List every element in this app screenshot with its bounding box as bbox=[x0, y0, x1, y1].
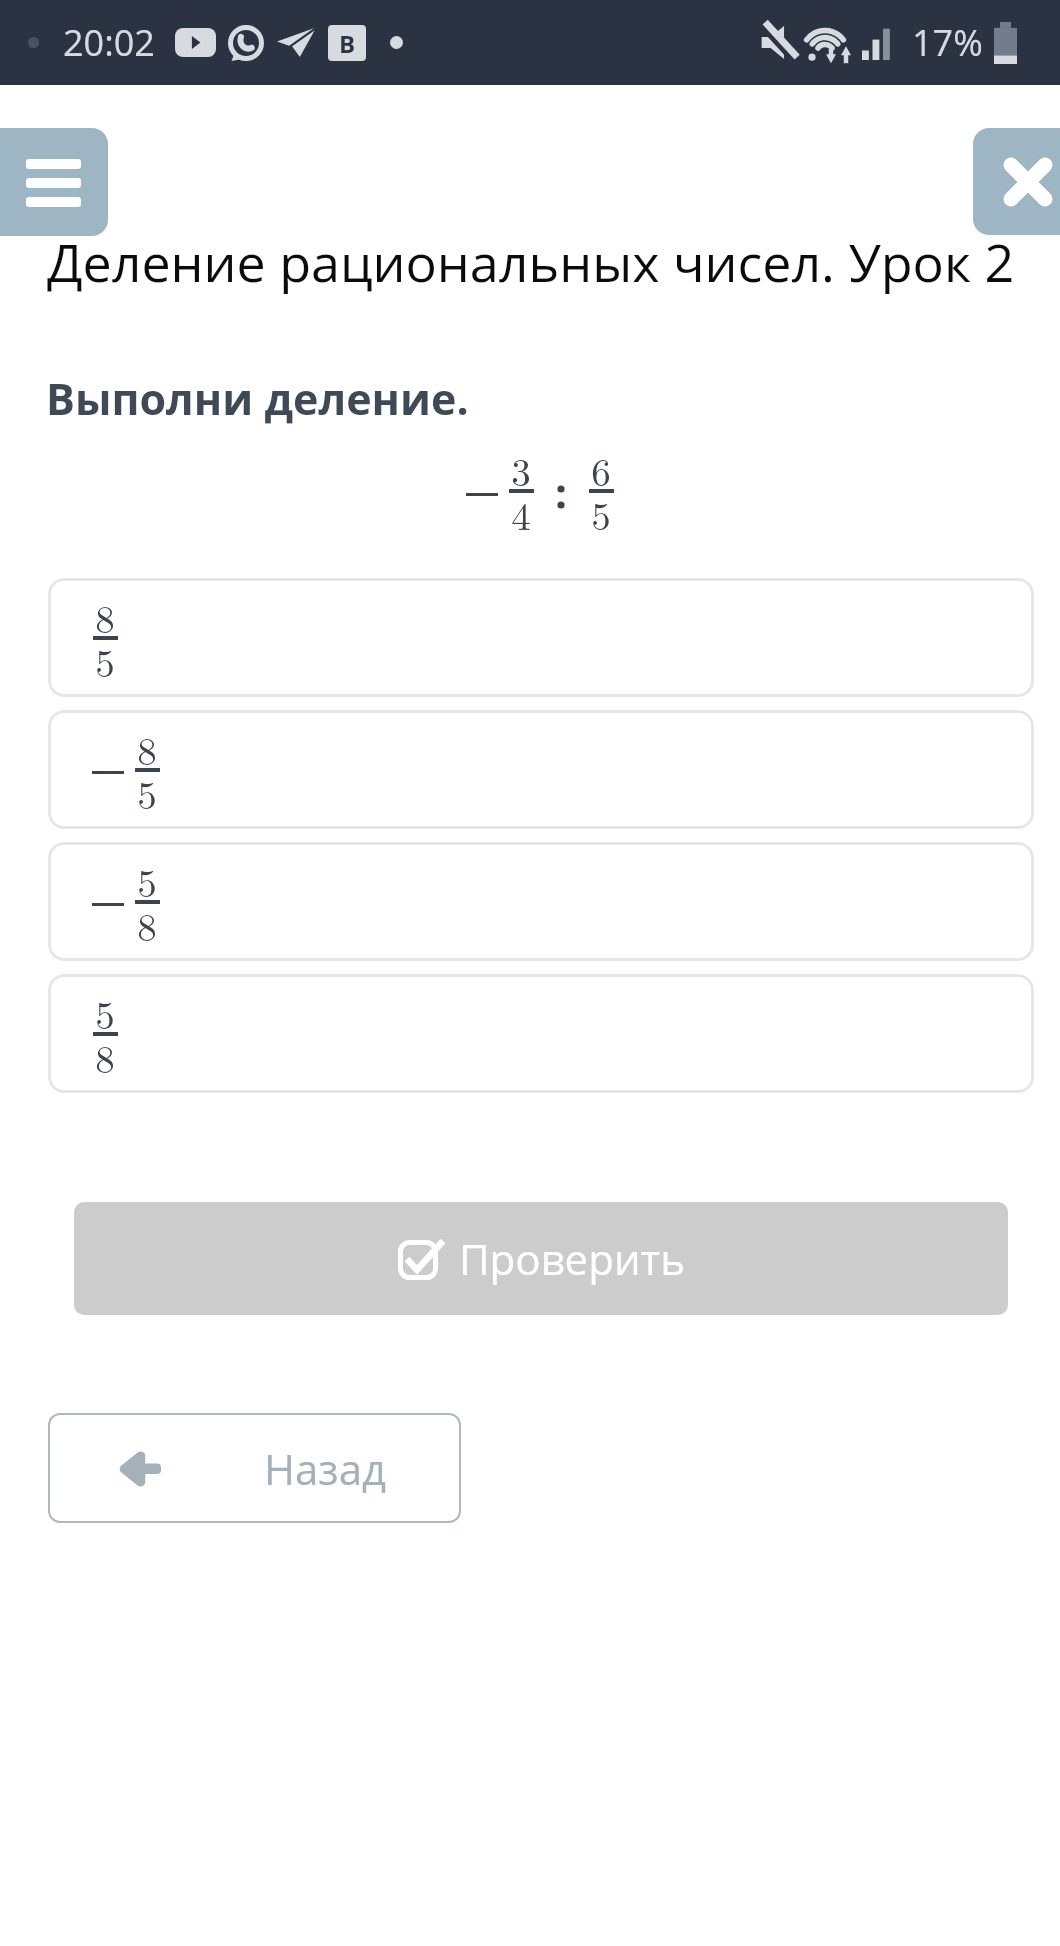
staticText: 5 bbox=[137, 853, 157, 908]
staticText: 6 bbox=[591, 442, 611, 497]
staticText: 3 bbox=[511, 442, 531, 497]
button[interactable]: Назад bbox=[48, 1413, 461, 1523]
button[interactable]: Close bbox=[973, 128, 1060, 235]
staticText: 8 bbox=[95, 589, 115, 644]
button[interactable]: 8 bbox=[48, 578, 1034, 697]
staticText: 5 bbox=[95, 985, 115, 1040]
staticText: 8 bbox=[137, 897, 157, 952]
staticText: 8 bbox=[137, 721, 157, 776]
staticText: 17% bbox=[912, 18, 983, 67]
staticText: 5 bbox=[137, 765, 157, 820]
button[interactable]: 5 bbox=[48, 842, 1034, 961]
staticText: Назад bbox=[264, 1440, 387, 1497]
staticText: Выполни деление. bbox=[46, 369, 469, 428]
staticText: 5 bbox=[95, 633, 115, 688]
staticText: 8 bbox=[95, 1029, 115, 1084]
button[interactable]: Menu bbox=[0, 128, 108, 236]
staticText: 20:02 bbox=[63, 18, 155, 67]
staticText: 4 bbox=[511, 486, 531, 541]
button[interactable]: 5 bbox=[48, 974, 1034, 1093]
staticText: Деление рациональных чисел. Урок 2 bbox=[47, 226, 1015, 297]
button[interactable]: Проверить bbox=[74, 1202, 1008, 1315]
staticText: B bbox=[339, 27, 356, 60]
staticText: Проверить bbox=[459, 1230, 685, 1287]
button[interactable]: 8 bbox=[48, 710, 1034, 829]
staticText: 5 bbox=[591, 486, 611, 541]
